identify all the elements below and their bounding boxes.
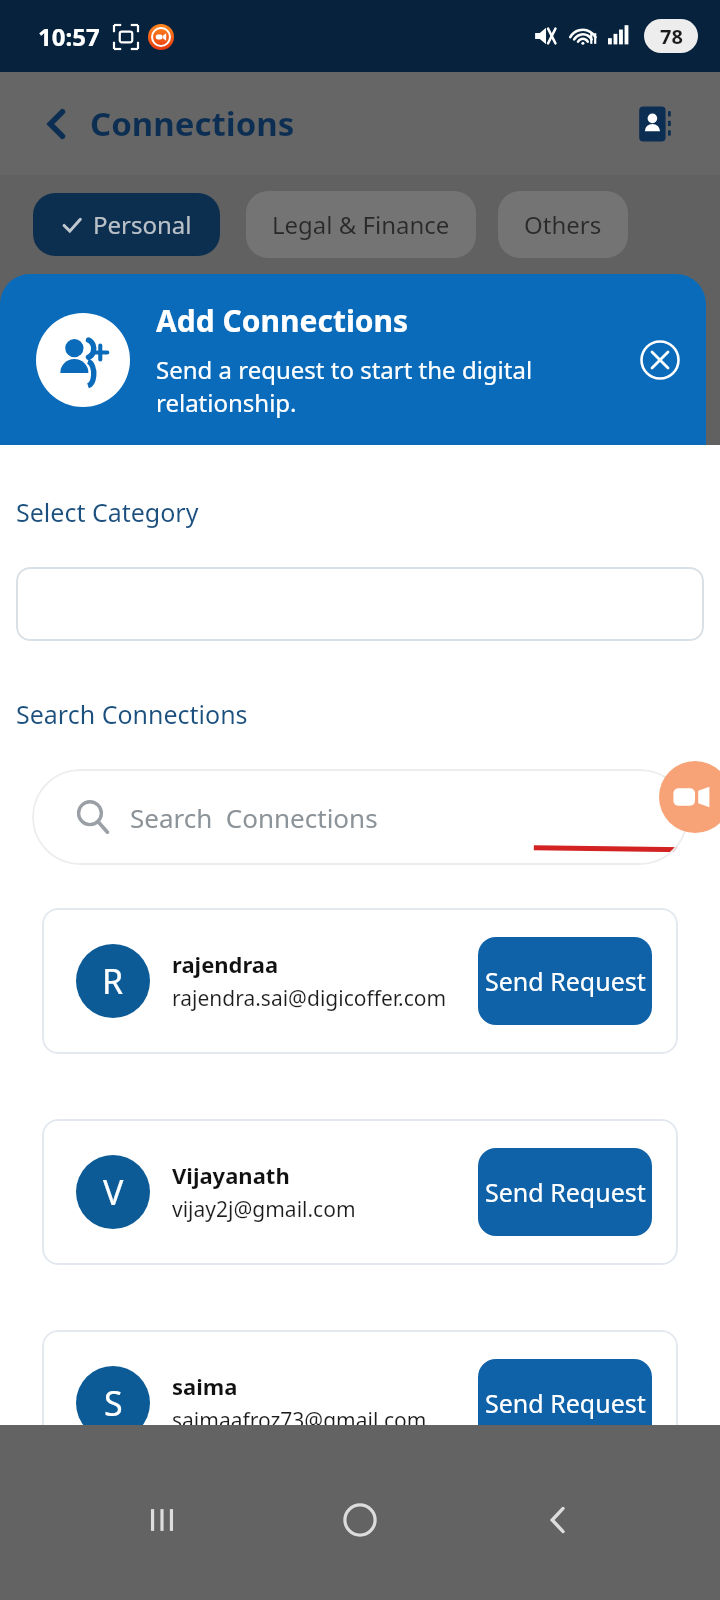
staticText: 10:57	[38, 20, 100, 53]
button[interactable]: Personal	[61, 208, 192, 241]
staticText: Search Connections	[16, 697, 248, 731]
button[interactable]: Contacts	[632, 100, 680, 148]
staticText: Others	[524, 208, 602, 241]
staticText: V	[103, 1169, 124, 1215]
button[interactable]: Send Request	[478, 1359, 652, 1447]
staticText: 78	[660, 23, 683, 50]
staticText: saimaafroz73@gmail.com	[172, 1406, 427, 1435]
button[interactable]: Video call	[659, 761, 720, 833]
staticText: saima	[172, 1371, 238, 1401]
button[interactable]: V	[42, 1119, 678, 1265]
staticText: Legal & Finance	[272, 208, 450, 241]
staticText: Personal	[93, 208, 192, 241]
button[interactable]: Back	[522, 1483, 596, 1557]
staticText: Add Connections	[156, 300, 409, 341]
staticText: rajendra.sai@digicoffer.com	[172, 984, 447, 1013]
staticText: Send a request to start the digital rela…	[156, 353, 533, 419]
button[interactable]: Legal & Finance	[272, 208, 450, 241]
button[interactable]: Send Request	[478, 1148, 652, 1236]
staticText: vijay2j@gmail.com	[172, 1195, 356, 1224]
staticText: Connections	[90, 101, 295, 146]
button[interactable]: Connections	[40, 101, 295, 146]
staticText: Vijayanath	[172, 1160, 290, 1190]
button[interactable]: Search Connections	[32, 769, 688, 865]
button[interactable]: Send Request	[478, 937, 652, 1025]
button[interactable]: Recents	[125, 1483, 199, 1557]
staticText: Send Request	[485, 964, 646, 998]
staticText: Select Category	[16, 495, 199, 529]
staticText: Send Request	[485, 1386, 646, 1420]
staticText: R	[102, 958, 124, 1004]
button[interactable]: Close	[634, 334, 686, 386]
button[interactable]: S	[42, 1330, 678, 1476]
staticText: S	[104, 1380, 123, 1426]
staticText: Search Connections	[130, 800, 378, 835]
staticText: Send Request	[485, 1175, 646, 1209]
button[interactable]: R	[42, 908, 678, 1054]
button[interactable]: Home	[323, 1483, 397, 1557]
staticText: rajendraa	[172, 949, 279, 979]
button[interactable]: Others	[524, 208, 602, 241]
button[interactable]	[16, 567, 704, 641]
